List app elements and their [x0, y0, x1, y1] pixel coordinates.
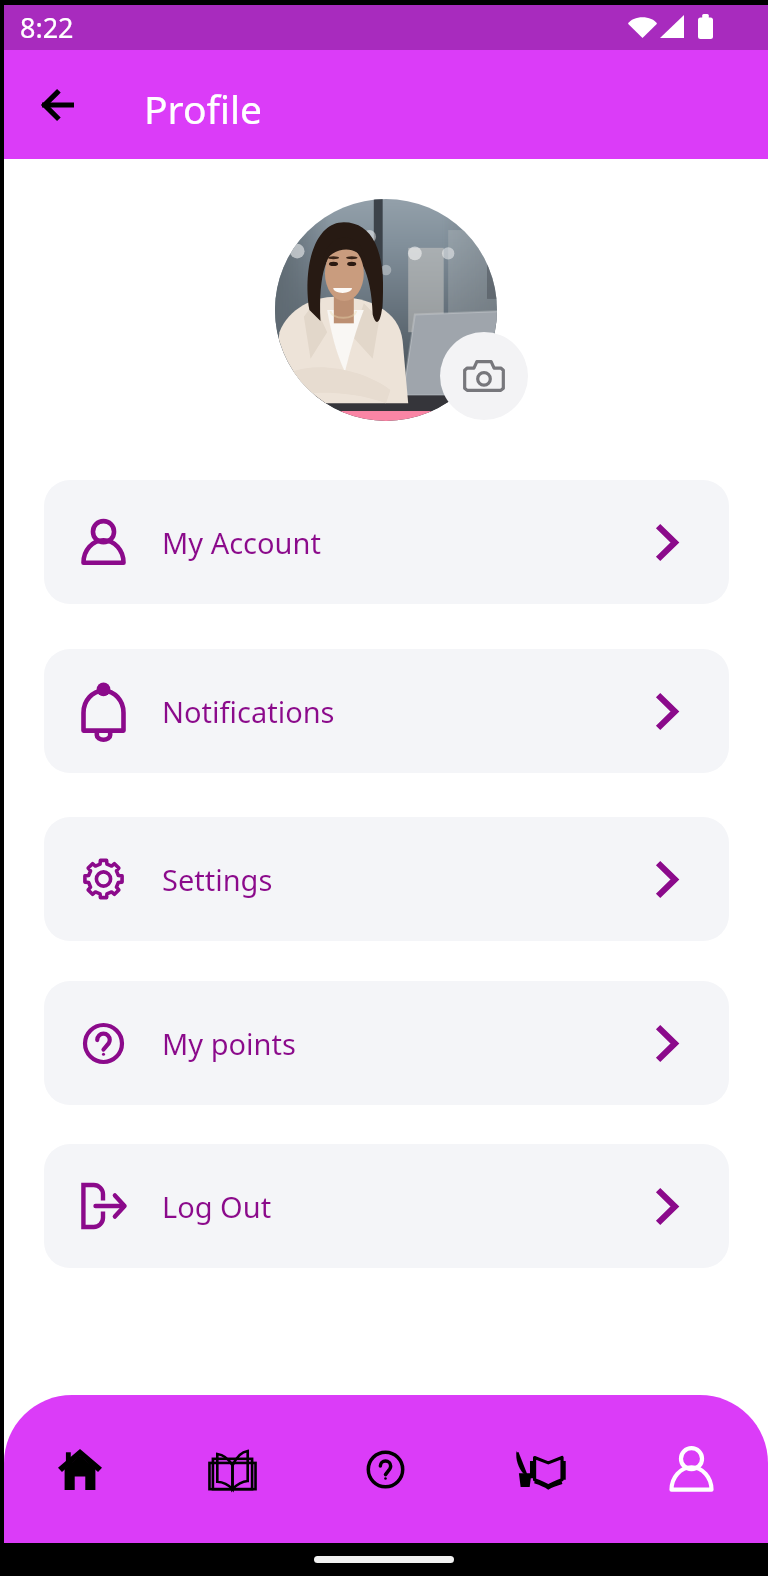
staticText: My Account	[162, 523, 321, 562]
staticText: 8:22	[20, 9, 74, 46]
button[interactable]: Change profile photo	[440, 332, 528, 420]
staticText: Log Out	[162, 1187, 272, 1226]
button[interactable]: Back	[20, 67, 96, 143]
button[interactable]: Profile	[615, 1419, 768, 1519]
staticText: My points	[162, 1024, 296, 1063]
staticText: Profile	[144, 82, 263, 135]
staticText: Notifications	[162, 692, 335, 731]
button[interactable]: Log Out	[44, 1144, 729, 1268]
button[interactable]: Help	[309, 1419, 462, 1519]
staticText: Settings	[162, 860, 273, 899]
button[interactable]: Write	[462, 1419, 615, 1519]
button[interactable]: Library	[156, 1419, 309, 1519]
button[interactable]: My Account	[44, 480, 729, 604]
button[interactable]: My points	[44, 981, 729, 1105]
button[interactable]: Settings	[44, 817, 729, 941]
button[interactable]: Notifications	[44, 649, 729, 773]
button[interactable]: Home	[4, 1419, 156, 1519]
